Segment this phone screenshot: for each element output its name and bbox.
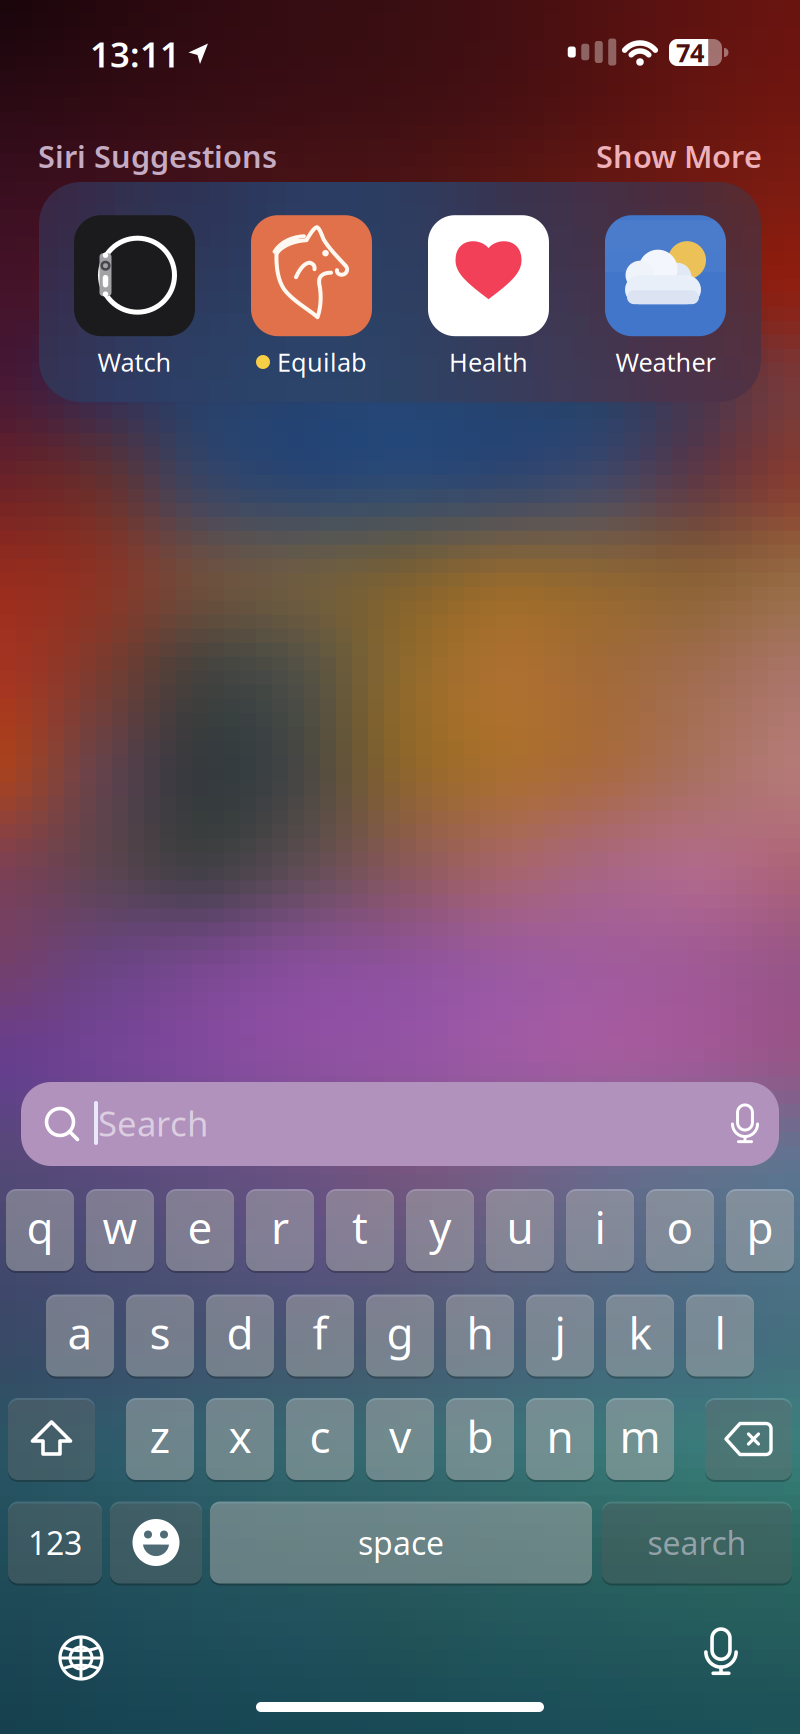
staticText: a (67, 1303, 92, 1362)
button[interactable]: i (566, 1189, 634, 1271)
staticText: k (628, 1303, 651, 1362)
staticText: x (228, 1407, 251, 1465)
button[interactable]: space (210, 1501, 592, 1583)
button[interactable]: p (726, 1189, 794, 1271)
staticText: q (26, 1198, 53, 1256)
staticText: b (466, 1407, 493, 1465)
button[interactable]: h (446, 1294, 514, 1376)
staticText: l (714, 1303, 725, 1362)
staticText: n (546, 1407, 573, 1465)
button[interactable]: Weather (605, 215, 726, 379)
button[interactable]: s (126, 1294, 194, 1376)
staticText: Weather (615, 345, 715, 379)
button[interactable]: c (286, 1398, 354, 1480)
staticText: Equilab (277, 345, 367, 379)
button[interactable]: e (166, 1189, 234, 1271)
button[interactable]: b (446, 1398, 514, 1480)
staticText: 123 (28, 1521, 82, 1564)
button[interactable]: n (526, 1398, 594, 1480)
button[interactable]: v (366, 1398, 434, 1480)
button[interactable]: w (86, 1189, 154, 1271)
button[interactable]: search (602, 1501, 792, 1583)
staticText: r (271, 1198, 289, 1256)
button[interactable]: Next keyboard (60, 1637, 102, 1679)
button[interactable]: Numbers (8, 1501, 102, 1583)
button[interactable]: x (206, 1398, 274, 1480)
button[interactable]: o (646, 1189, 714, 1271)
staticText: search (647, 1521, 746, 1564)
button[interactable]: Dictation (726, 1103, 764, 1144)
staticText: j (554, 1303, 565, 1362)
button[interactable]: r (246, 1189, 314, 1271)
button[interactable]: u (486, 1189, 554, 1271)
button[interactable]: t (326, 1189, 394, 1271)
button[interactable]: k (606, 1294, 674, 1376)
staticText: s (149, 1303, 170, 1362)
button[interactable]: l (686, 1294, 754, 1376)
staticText: t (352, 1198, 368, 1256)
staticText: m (619, 1407, 660, 1465)
staticText: Health (449, 345, 528, 379)
button[interactable]: z (126, 1398, 194, 1480)
button[interactable]: q (6, 1189, 74, 1271)
staticText: y (429, 1198, 451, 1256)
staticText: space (358, 1521, 444, 1564)
button[interactable]: Shift (8, 1398, 95, 1480)
button[interactable]: a (46, 1294, 114, 1376)
staticText: i (594, 1198, 605, 1256)
button[interactable]: Dictation (699, 1627, 743, 1677)
button[interactable]: Equilab (251, 215, 372, 379)
staticText: u (506, 1198, 533, 1256)
staticText: Search (98, 1100, 208, 1146)
button[interactable]: Watch (74, 215, 195, 379)
staticText: v (389, 1407, 411, 1465)
button[interactable]: Show More (596, 136, 762, 176)
staticText: Watch (97, 345, 171, 379)
staticText: Siri Suggestions (38, 136, 277, 176)
staticText: z (149, 1407, 170, 1465)
staticText: f (312, 1303, 327, 1362)
staticText: c (309, 1407, 330, 1465)
staticText: h (466, 1303, 493, 1362)
staticText: Show More (596, 136, 762, 176)
staticText: p (746, 1198, 773, 1256)
button[interactable]: Emoji (110, 1501, 202, 1583)
button[interactable]: Delete (705, 1398, 792, 1480)
button[interactable]: y (406, 1189, 474, 1271)
button[interactable]: j (526, 1294, 594, 1376)
staticText: 74 (676, 36, 704, 69)
button[interactable]: m (606, 1398, 674, 1480)
button[interactable]: Health (428, 215, 549, 379)
button[interactable]: f (286, 1294, 354, 1376)
staticText: o (666, 1198, 693, 1256)
button[interactable]: d (206, 1294, 274, 1376)
staticText: g (386, 1303, 413, 1362)
staticText: 13:11 (90, 31, 180, 77)
staticText: e (187, 1198, 212, 1256)
staticText: d (226, 1303, 253, 1362)
button[interactable]: g (366, 1294, 434, 1376)
staticText: w (102, 1198, 137, 1256)
